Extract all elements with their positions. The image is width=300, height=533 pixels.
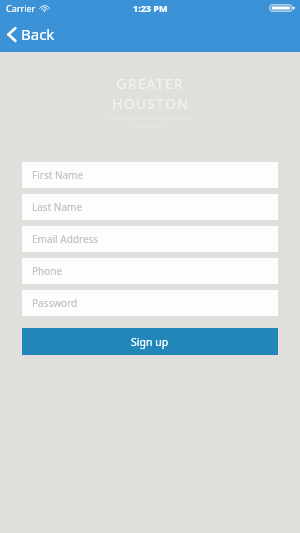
staticText: 1:23 PM bbox=[133, 2, 168, 14]
button[interactable]: Email Address bbox=[22, 226, 278, 252]
staticText: Sign up bbox=[131, 335, 169, 349]
staticText: Phone bbox=[32, 264, 63, 278]
button[interactable]: Sign up bbox=[22, 328, 278, 355]
staticText: GREATER bbox=[116, 74, 184, 93]
staticText: Last Name bbox=[32, 200, 83, 214]
staticText: Password bbox=[32, 296, 78, 310]
staticText: Carrier bbox=[6, 2, 36, 14]
staticText: Email Address bbox=[32, 232, 99, 246]
button[interactable]: Password bbox=[22, 290, 278, 316]
button[interactable]: Back bbox=[0, 20, 65, 48]
staticText: First Name bbox=[32, 168, 84, 182]
staticText: HOUSTON bbox=[112, 94, 189, 113]
button[interactable]: First Name bbox=[22, 162, 278, 188]
staticText: Back bbox=[21, 24, 55, 44]
button[interactable]: Phone bbox=[22, 258, 278, 284]
button[interactable]: Last Name bbox=[22, 194, 278, 220]
